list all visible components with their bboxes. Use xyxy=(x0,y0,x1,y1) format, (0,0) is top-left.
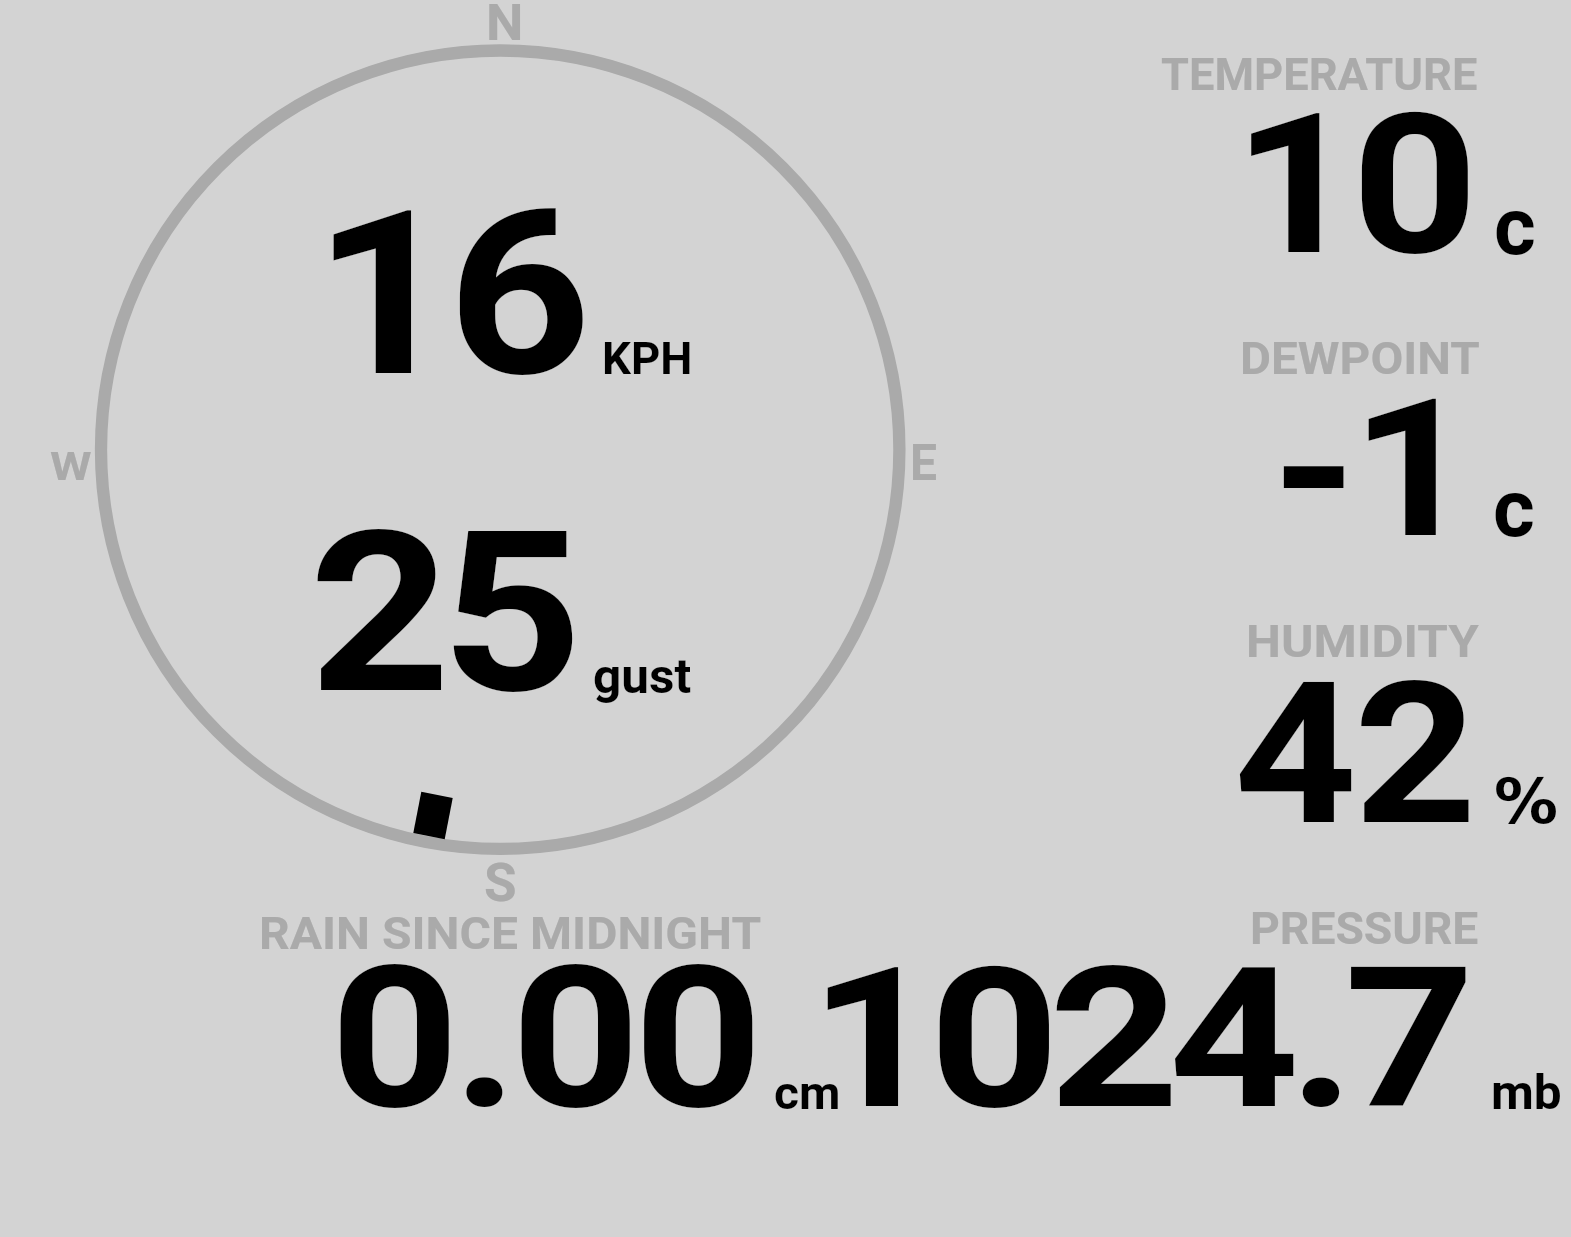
staticText: c xyxy=(1493,462,1535,556)
button[interactable]: Humidity 42 percent xyxy=(1100,605,1571,875)
button[interactable]: Dewpoint -1 degrees C xyxy=(1100,325,1571,595)
staticText: PRESSURE xyxy=(1250,902,1479,955)
button[interactable]: Pressure 1024.7 mb xyxy=(870,895,1571,1120)
staticText: cm xyxy=(774,1066,841,1120)
staticText: -1 xyxy=(1272,358,1470,582)
staticText: DEWPOINT xyxy=(1240,332,1481,385)
staticText: 42 xyxy=(1234,639,1474,870)
button[interactable]: Rain since midnight 0.00 cm xyxy=(240,895,860,1120)
staticText: gust xyxy=(593,648,692,704)
staticText: 10 xyxy=(1233,71,1471,300)
staticText: KPH xyxy=(602,332,693,385)
staticText: c xyxy=(1494,180,1536,274)
staticText: HUMIDITY xyxy=(1246,615,1479,668)
staticText: E xyxy=(910,434,938,493)
button[interactable]: Temperature 10 degrees C xyxy=(1100,40,1571,310)
staticText: W xyxy=(50,445,92,490)
staticText: 25 xyxy=(309,484,573,744)
staticText: 0.00 xyxy=(330,924,757,1154)
staticText: N xyxy=(486,0,524,53)
staticText: 1024.7 xyxy=(809,925,1464,1154)
staticText: RAIN SINCE MIDNIGHT xyxy=(259,907,762,960)
button[interactable]: Wind 16 KPH, gusting 25 xyxy=(101,50,901,850)
staticText: % xyxy=(1494,765,1559,837)
staticText: 16 xyxy=(313,161,582,429)
staticText: S xyxy=(484,852,517,914)
staticText: TEMPERATURE xyxy=(1161,48,1478,101)
staticText: mb xyxy=(1491,1064,1562,1120)
